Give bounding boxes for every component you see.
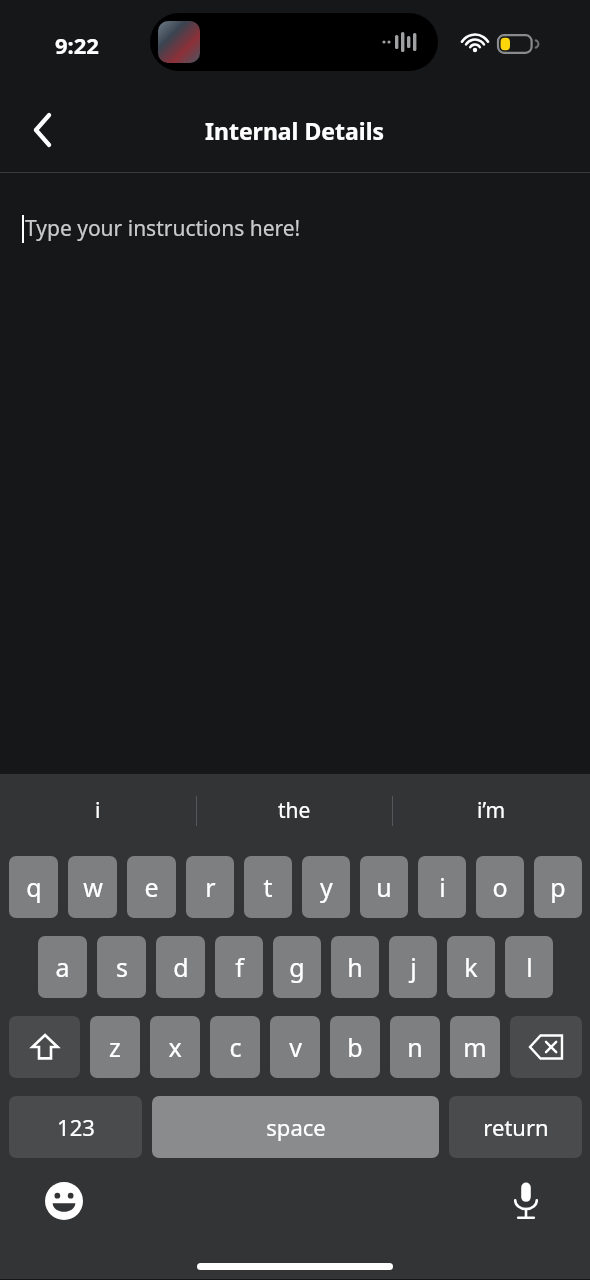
button[interactable]: Backspace [510, 1016, 582, 1078]
staticText: 9:22 [55, 30, 99, 60]
button[interactable]: p [534, 856, 582, 918]
staticText: Internal Details [205, 115, 385, 146]
button[interactable]: j [389, 936, 437, 998]
staticText: t [263, 870, 273, 904]
staticText: i [95, 796, 101, 825]
button[interactable]: Type your instructions here! [0, 173, 590, 774]
staticText: c [229, 1030, 242, 1064]
staticText: j [410, 950, 417, 984]
button[interactable]: the [196, 774, 393, 847]
staticText: return [483, 1112, 549, 1142]
staticText: i [439, 870, 446, 904]
staticText: k [464, 950, 478, 984]
staticText: e [144, 870, 159, 904]
button[interactable]: Dictation [498, 1173, 554, 1229]
button[interactable]: b [330, 1016, 380, 1078]
staticText: s [116, 950, 128, 984]
button[interactable]: k [447, 936, 495, 998]
button[interactable]: l [505, 936, 553, 998]
staticText: z [109, 1030, 121, 1064]
staticText: f [235, 950, 244, 984]
button[interactable]: Emoji [36, 1173, 92, 1229]
button[interactable]: 123 [9, 1096, 142, 1158]
staticText: the [278, 796, 311, 825]
staticText: space [266, 1112, 326, 1142]
staticText: y [320, 870, 333, 904]
button[interactable]: n [390, 1016, 440, 1078]
staticText: a [55, 950, 70, 984]
button[interactable]: x [150, 1016, 200, 1078]
staticText: n [407, 1030, 423, 1064]
staticText: Type your instructions here! [25, 214, 301, 243]
button[interactable]: r [186, 856, 234, 918]
button[interactable]: h [331, 936, 379, 998]
button[interactable]: m [450, 1016, 500, 1078]
button[interactable]: Shift [9, 1016, 80, 1078]
staticText: q [26, 870, 42, 904]
button[interactable]: f [215, 936, 263, 998]
button[interactable]: d [156, 936, 205, 998]
button[interactable]: q [9, 856, 58, 918]
button[interactable]: u [360, 856, 408, 918]
staticText: u [376, 870, 392, 904]
button[interactable]: z [90, 1016, 140, 1078]
button[interactable]: a [38, 936, 87, 998]
button[interactable]: s [97, 936, 146, 998]
staticText: r [205, 870, 216, 904]
button[interactable]: y [302, 856, 350, 918]
staticText: w [83, 870, 103, 904]
button[interactable]: space [152, 1096, 439, 1158]
button[interactable]: o [476, 856, 524, 918]
button[interactable]: w [68, 856, 117, 918]
button[interactable]: c [210, 1016, 260, 1078]
staticText: g [289, 950, 305, 984]
button[interactable]: g [273, 936, 321, 998]
button[interactable]: i [418, 856, 466, 918]
staticText: p [550, 870, 566, 904]
button[interactable]: t [244, 856, 292, 918]
staticText: m [463, 1030, 487, 1064]
button[interactable]: return [449, 1096, 582, 1158]
staticText: 123 [57, 1112, 95, 1142]
button[interactable]: Back [14, 101, 72, 159]
staticText: h [347, 950, 363, 984]
staticText: l [526, 950, 533, 984]
staticText: x [168, 1030, 182, 1064]
button[interactable]: v [270, 1016, 320, 1078]
button[interactable]: i’m [393, 774, 590, 847]
button[interactable]: e [127, 856, 176, 918]
staticText: i’m [477, 796, 506, 825]
staticText: v [289, 1030, 302, 1064]
staticText: o [492, 870, 508, 904]
staticText: d [173, 950, 189, 984]
button[interactable]: i [0, 774, 196, 847]
staticText: b [347, 1030, 363, 1064]
